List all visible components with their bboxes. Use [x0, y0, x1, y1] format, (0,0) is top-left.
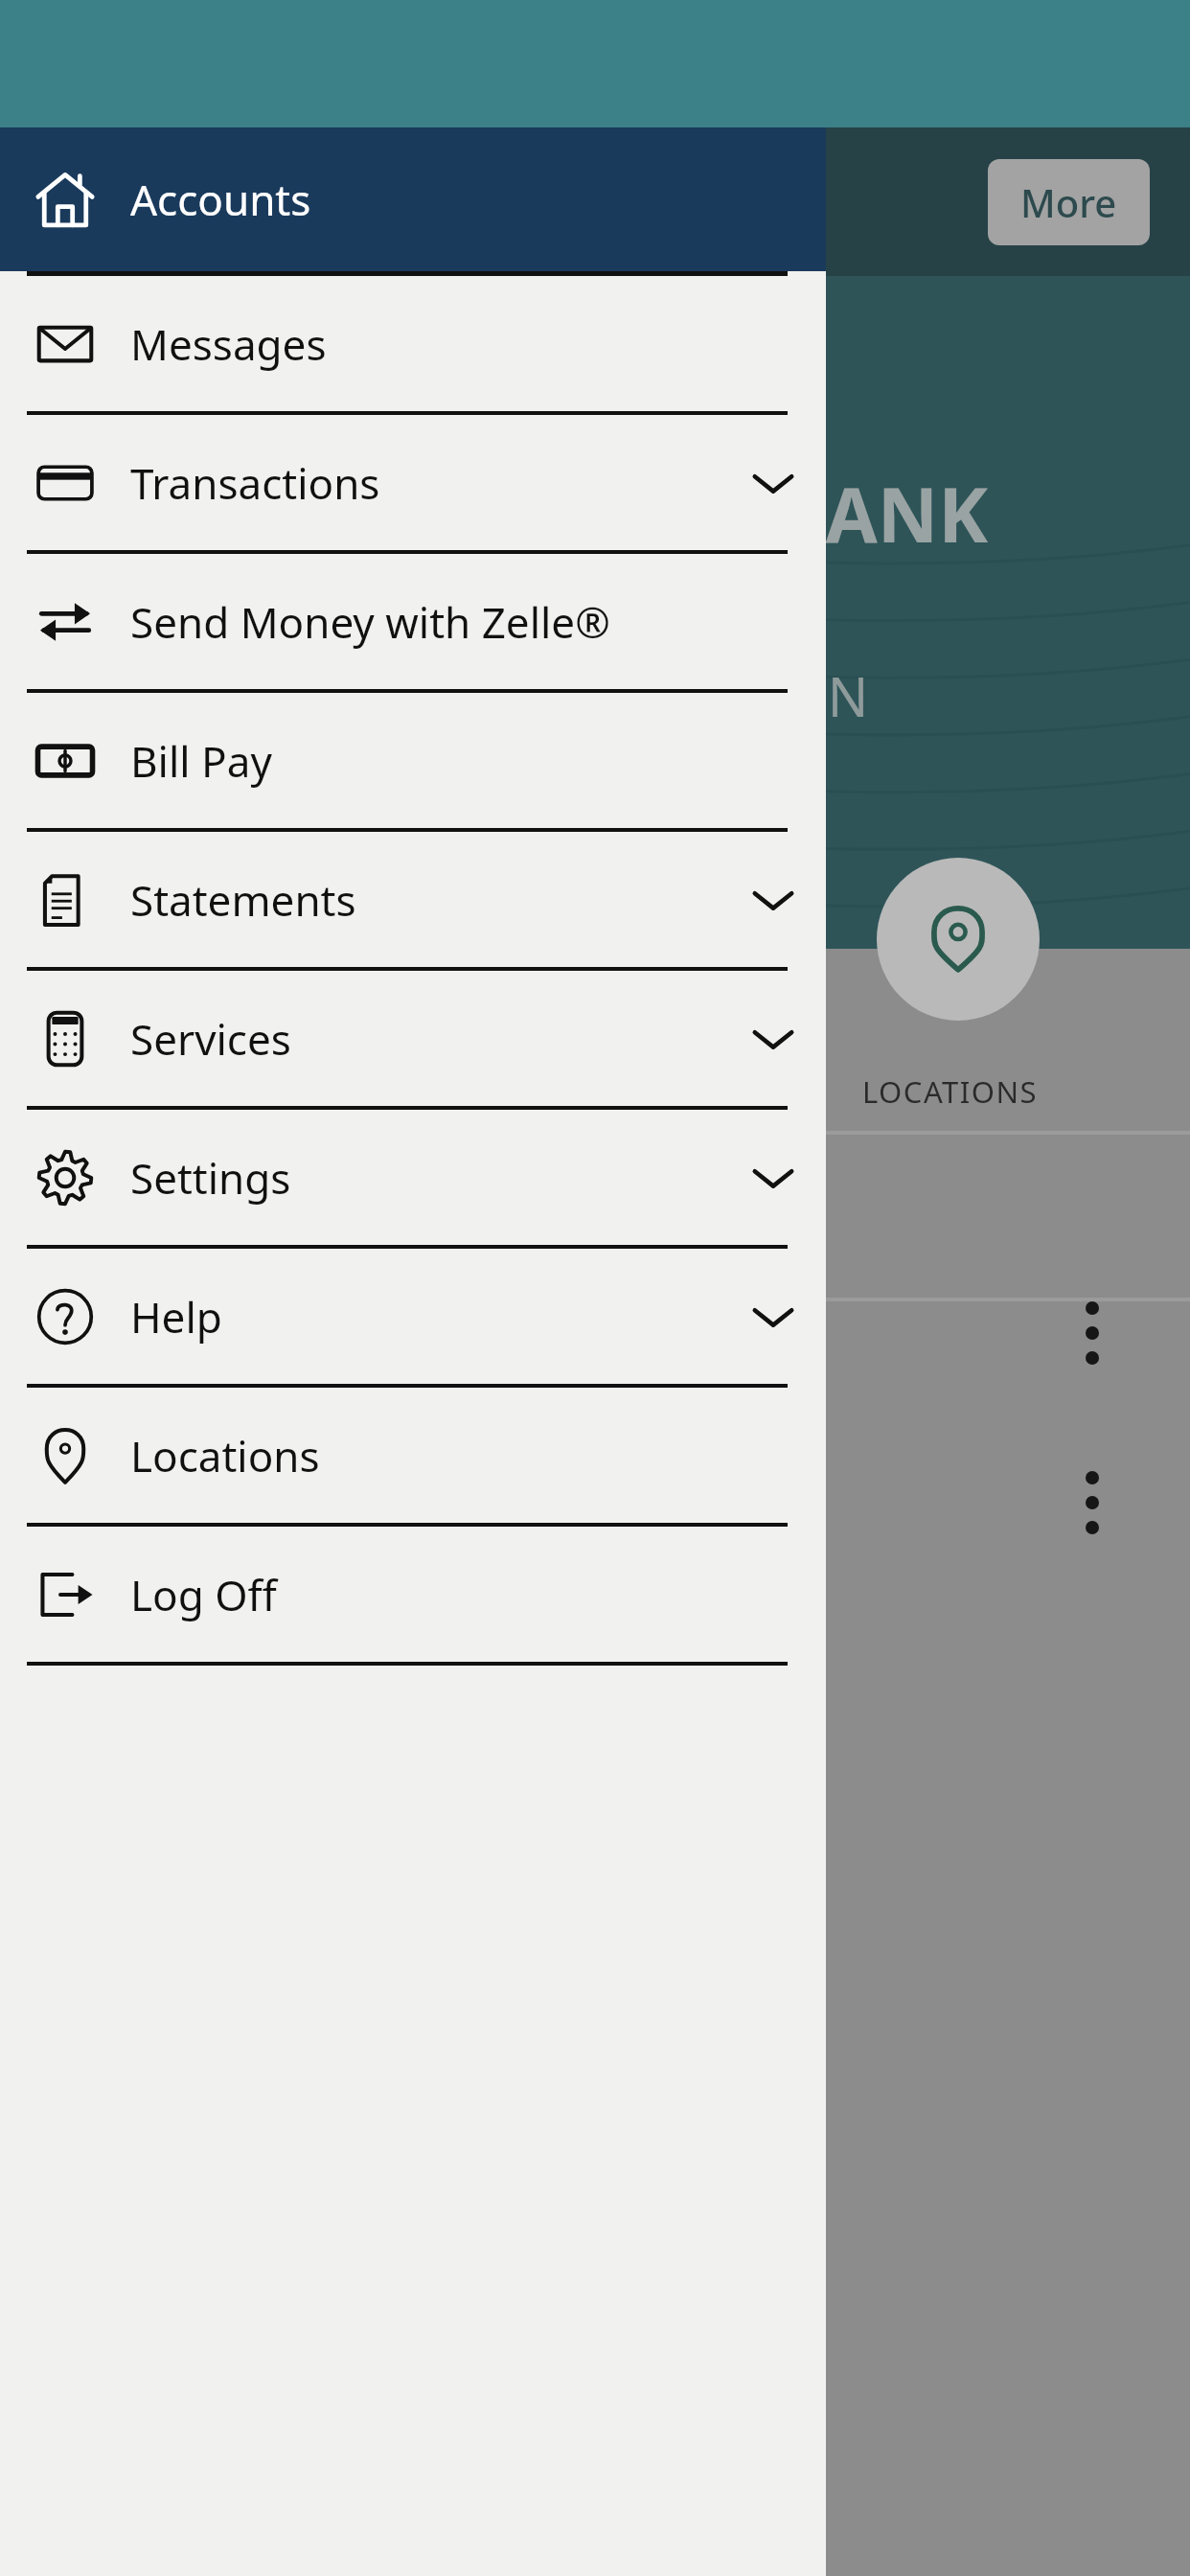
button[interactable]: Statements: [0, 832, 826, 967]
button[interactable]: Bill Pay: [0, 693, 826, 828]
staticText: BANK: [776, 463, 989, 564]
button[interactable]: Settings: [0, 1110, 826, 1245]
button[interactable]: Locations: [877, 858, 1040, 1021]
button[interactable]: More options: [1059, 1469, 1126, 1536]
staticText: Help: [130, 1288, 721, 1345]
staticText: Log Off: [130, 1566, 721, 1623]
staticText: Accounts: [130, 171, 311, 228]
button[interactable]: More options: [1059, 1299, 1126, 1367]
button[interactable]: More: [988, 159, 1150, 245]
button[interactable]: Send Money with Zelle®: [0, 554, 826, 689]
staticText: Settings: [130, 1149, 721, 1207]
staticText: Services: [130, 1010, 721, 1068]
button[interactable]: Accounts: [0, 127, 826, 271]
button[interactable]: Transactions: [0, 415, 826, 550]
staticText: LOCATIONS: [862, 1071, 1039, 1112]
staticText: Bill Pay: [130, 732, 721, 790]
button[interactable]: Services: [0, 971, 826, 1106]
staticText: Send Money with Zelle®: [130, 593, 721, 651]
staticText: Locations: [130, 1427, 721, 1484]
button[interactable]: Locations: [0, 1388, 826, 1523]
staticText: Messages: [130, 315, 721, 373]
staticText: ON: [786, 659, 869, 732]
staticText: Statements: [130, 871, 721, 929]
staticText: Transactions: [130, 454, 721, 512]
button[interactable]: Help: [0, 1249, 826, 1384]
button[interactable]: Log Off: [0, 1527, 826, 1662]
staticText: More: [1020, 176, 1117, 228]
button[interactable]: Messages: [0, 276, 826, 411]
